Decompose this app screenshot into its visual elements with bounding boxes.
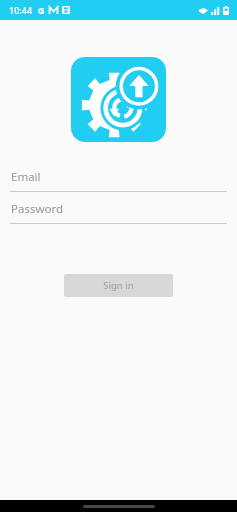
- staticText: Email: [11, 169, 41, 185]
- staticText: Sign in: [103, 279, 134, 292]
- button[interactable]: Sign in: [64, 274, 173, 297]
- staticText: G: [38, 4, 45, 16]
- other: App logo: [71, 57, 166, 142]
- staticText: Password: [11, 201, 64, 217]
- staticText: 10:44: [9, 4, 33, 16]
- button[interactable]: Password: [10, 201, 227, 224]
- button[interactable]: Email: [10, 169, 227, 192]
